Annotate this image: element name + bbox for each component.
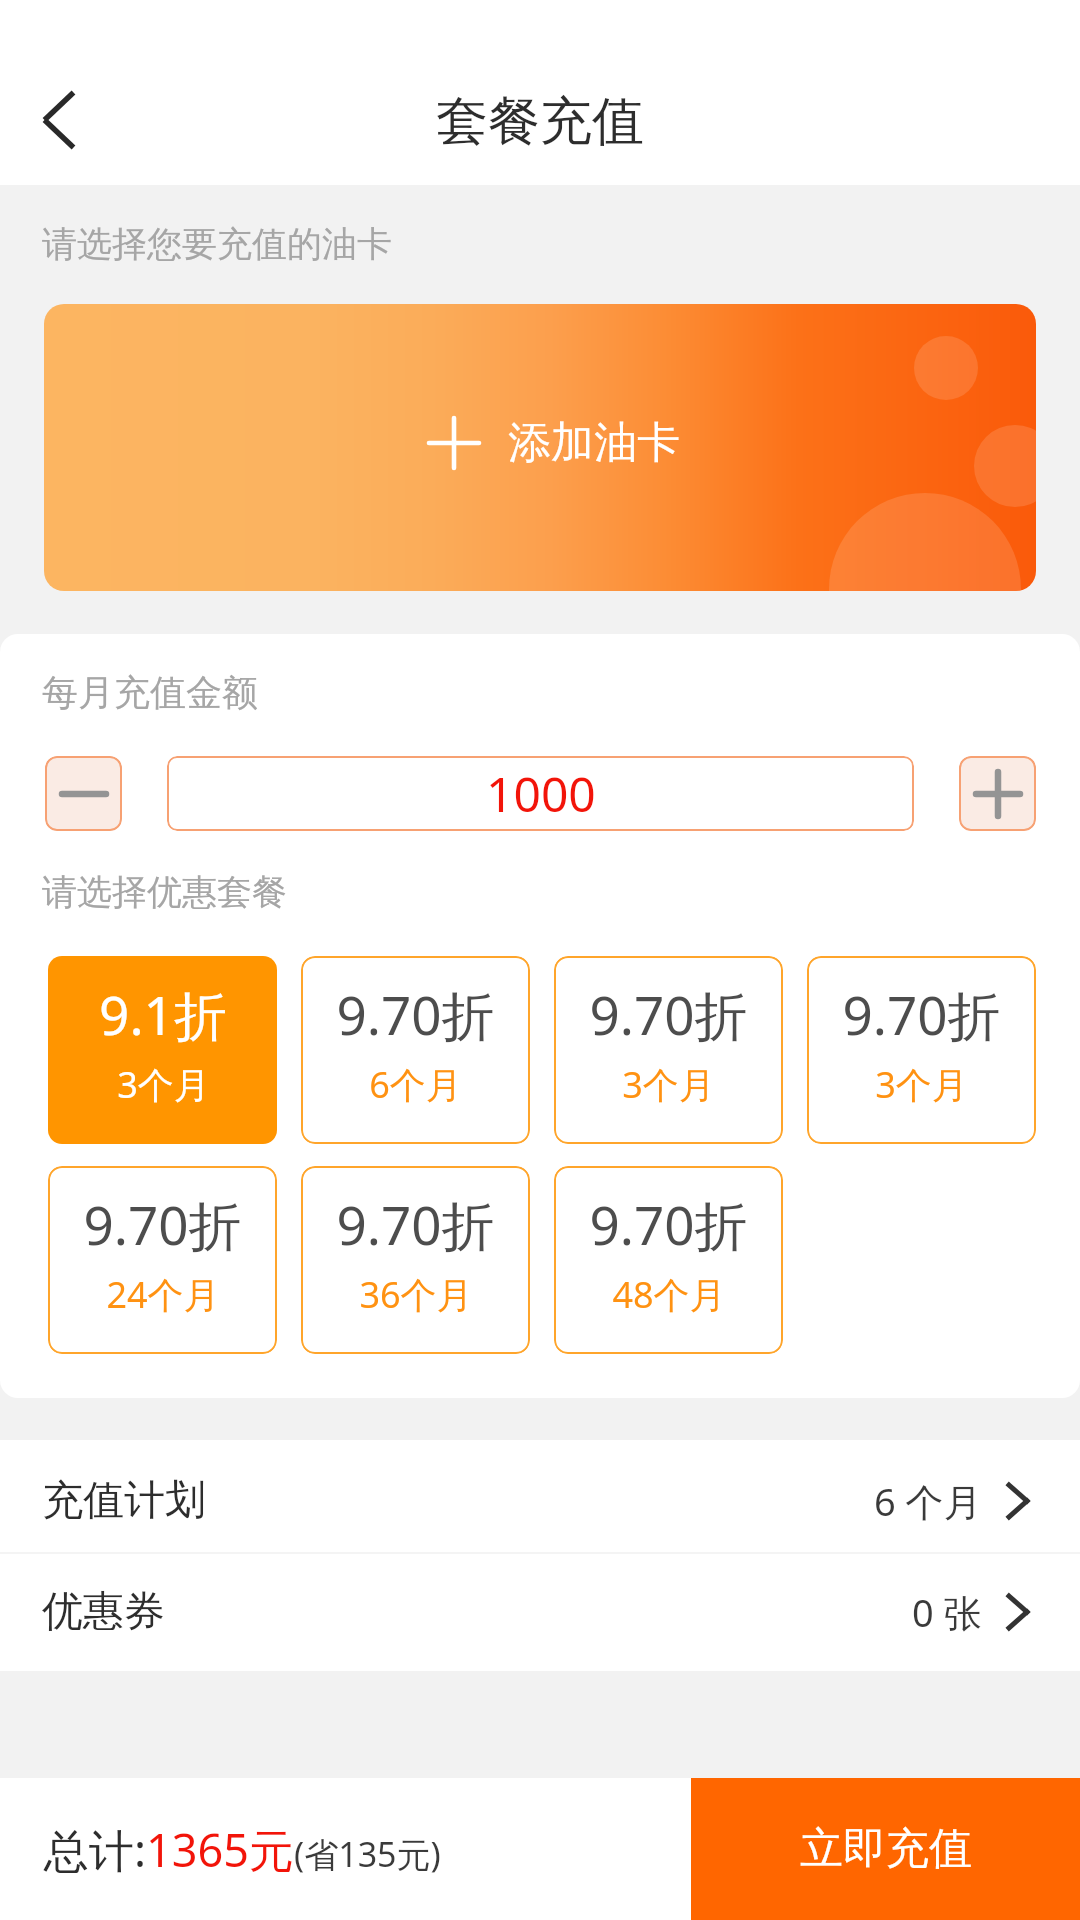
staticText: 48个月 [612, 1270, 726, 1319]
button[interactable]: 9.70折 [807, 956, 1036, 1144]
staticText: 套餐充值 [436, 89, 644, 155]
staticText: 9.70折 [336, 978, 495, 1050]
staticText: 9.70折 [589, 978, 748, 1050]
staticText: 9.70折 [83, 1188, 242, 1260]
staticText: 6个月 [369, 1060, 462, 1109]
button[interactable]: Increase amount [959, 756, 1036, 831]
button[interactable]: Back [17, 78, 101, 162]
staticText: 添加油卡 [508, 416, 680, 470]
staticText: 总计:1365元(省135元) [44, 1819, 441, 1880]
button[interactable]: 1000 [167, 756, 914, 831]
staticText: 9.1折 [99, 978, 227, 1050]
staticText: 请选择您要充值的油卡 [42, 222, 392, 266]
button[interactable]: 9.1折 [48, 956, 277, 1144]
staticText: 优惠券 [42, 1586, 165, 1638]
staticText: 3个月 [622, 1060, 715, 1109]
staticText: 0 张 [912, 1586, 982, 1638]
staticText: 9.70折 [336, 1188, 495, 1260]
button[interactable]: Decrease amount [45, 756, 122, 831]
staticText: 请选择优惠套餐 [42, 870, 287, 914]
button[interactable]: 充值计划 [0, 1440, 1080, 1552]
staticText: 3个月 [875, 1060, 968, 1109]
staticText: 9.70折 [842, 978, 1001, 1050]
staticText: 立即充值 [800, 1822, 972, 1876]
button[interactable]: 9.70折 [301, 1166, 530, 1354]
button[interactable]: 9.70折 [301, 956, 530, 1144]
staticText: 每月充值金额 [42, 670, 258, 715]
staticText: 3个月 [117, 1060, 210, 1109]
staticText: 6 个月 [874, 1475, 982, 1527]
staticText: 充值计划 [42, 1475, 206, 1527]
staticText: 24个月 [106, 1270, 220, 1319]
button[interactable]: 添加油卡 [44, 304, 1036, 591]
button[interactable]: 优惠券 [0, 1554, 1080, 1671]
button[interactable]: 9.70折 [48, 1166, 277, 1354]
staticText: 9.70折 [589, 1188, 748, 1260]
button[interactable]: 立即充值 [691, 1778, 1080, 1920]
staticText: 36个月 [359, 1270, 473, 1319]
button[interactable]: 9.70折 [554, 956, 783, 1144]
staticText: 1000 [486, 761, 596, 826]
button[interactable]: 9.70折 [554, 1166, 783, 1354]
